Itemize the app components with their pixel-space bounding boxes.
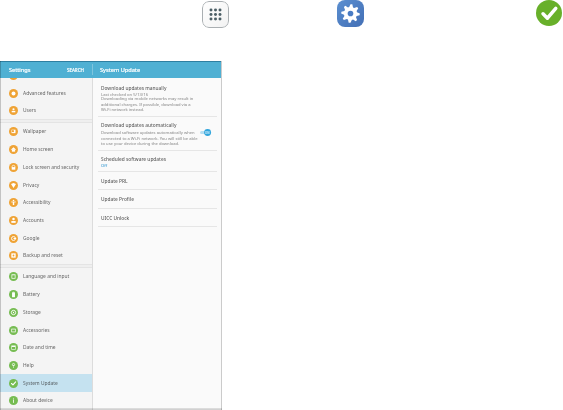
button[interactable]: Users bbox=[0, 101, 92, 119]
staticText: Download software updates automatically … bbox=[101, 130, 200, 146]
staticText: Battery bbox=[23, 291, 40, 298]
staticText: Accessibility bbox=[23, 199, 51, 206]
staticText: Privacy bbox=[23, 182, 40, 189]
button[interactable]: Storage bbox=[0, 303, 92, 321]
button[interactable]: System Update bbox=[0, 374, 92, 392]
staticText: Download updates automatically bbox=[101, 122, 177, 129]
button[interactable]: Date and time bbox=[0, 338, 92, 356]
button[interactable]: Apps bbox=[202, 1, 229, 28]
button[interactable]: Language and input bbox=[0, 267, 92, 285]
button[interactable]: Backup and reset bbox=[0, 246, 92, 264]
staticText: Scheduled software updates bbox=[101, 156, 166, 163]
button[interactable]: Done bbox=[536, 0, 562, 26]
button[interactable]: UICC Unlock bbox=[93, 209, 222, 227]
button[interactable]: Download updates manually bbox=[93, 78, 222, 116]
button[interactable]: SEARCH bbox=[67, 67, 84, 73]
button[interactable]: Advanced features bbox=[0, 84, 92, 102]
staticText: Home screen bbox=[23, 146, 54, 153]
button[interactable]: Accessories bbox=[0, 321, 92, 339]
staticText: Help bbox=[23, 362, 34, 369]
staticText: System Update bbox=[23, 380, 58, 387]
button[interactable]: Update PRL bbox=[93, 172, 222, 191]
staticText: Download updates manually bbox=[101, 85, 167, 92]
button[interactable]: Download updates automatically bbox=[93, 117, 222, 150]
staticText: Settings bbox=[9, 66, 31, 74]
button[interactable]: Lock screen and security bbox=[0, 158, 92, 176]
staticText: Update Profile bbox=[101, 196, 134, 203]
staticText: Accessories bbox=[23, 327, 50, 334]
staticText: Update PRL bbox=[101, 178, 128, 185]
button[interactable]: Help bbox=[0, 356, 92, 374]
staticText: System Update bbox=[100, 66, 141, 74]
button[interactable]: Toggle automatic download bbox=[200, 128, 212, 137]
button[interactable]: Google bbox=[0, 229, 92, 247]
button[interactable]: Accounts bbox=[0, 211, 92, 229]
staticText: ON bbox=[205, 131, 210, 135]
button[interactable]: Home screen bbox=[0, 140, 92, 158]
staticText: Lock screen and security bbox=[23, 164, 80, 171]
staticText: SEARCH bbox=[67, 67, 84, 73]
staticText: Advanced features bbox=[23, 90, 66, 97]
button[interactable]: Scheduled software updates bbox=[93, 150, 222, 171]
staticText: About device bbox=[23, 397, 53, 404]
staticText: Off bbox=[101, 163, 108, 169]
staticText: Backup and reset bbox=[23, 252, 63, 259]
button[interactable]: Settings bbox=[337, 0, 364, 27]
staticText: Date and time bbox=[23, 344, 56, 351]
staticText: Downloading via mobile networks may resu… bbox=[101, 96, 196, 112]
staticText: UICC Unlock bbox=[101, 215, 130, 222]
staticText: Wallpaper bbox=[23, 128, 47, 135]
staticText: Storage bbox=[23, 309, 41, 316]
staticText: Users bbox=[23, 107, 37, 114]
staticText: Last checked on 5/13/16 bbox=[101, 92, 149, 98]
button[interactable]: Privacy bbox=[0, 176, 92, 194]
button[interactable]: About device bbox=[0, 391, 92, 409]
button[interactable]: Sounds and vibration bbox=[0, 78, 92, 84]
staticText: Google bbox=[23, 235, 40, 242]
button[interactable]: Accessibility bbox=[0, 193, 92, 211]
staticText: Language and input bbox=[23, 273, 70, 280]
button[interactable]: Wallpaper bbox=[0, 122, 92, 140]
button[interactable]: Battery bbox=[0, 285, 92, 303]
button[interactable]: Update Profile bbox=[93, 190, 222, 209]
staticText: Accounts bbox=[23, 217, 44, 224]
